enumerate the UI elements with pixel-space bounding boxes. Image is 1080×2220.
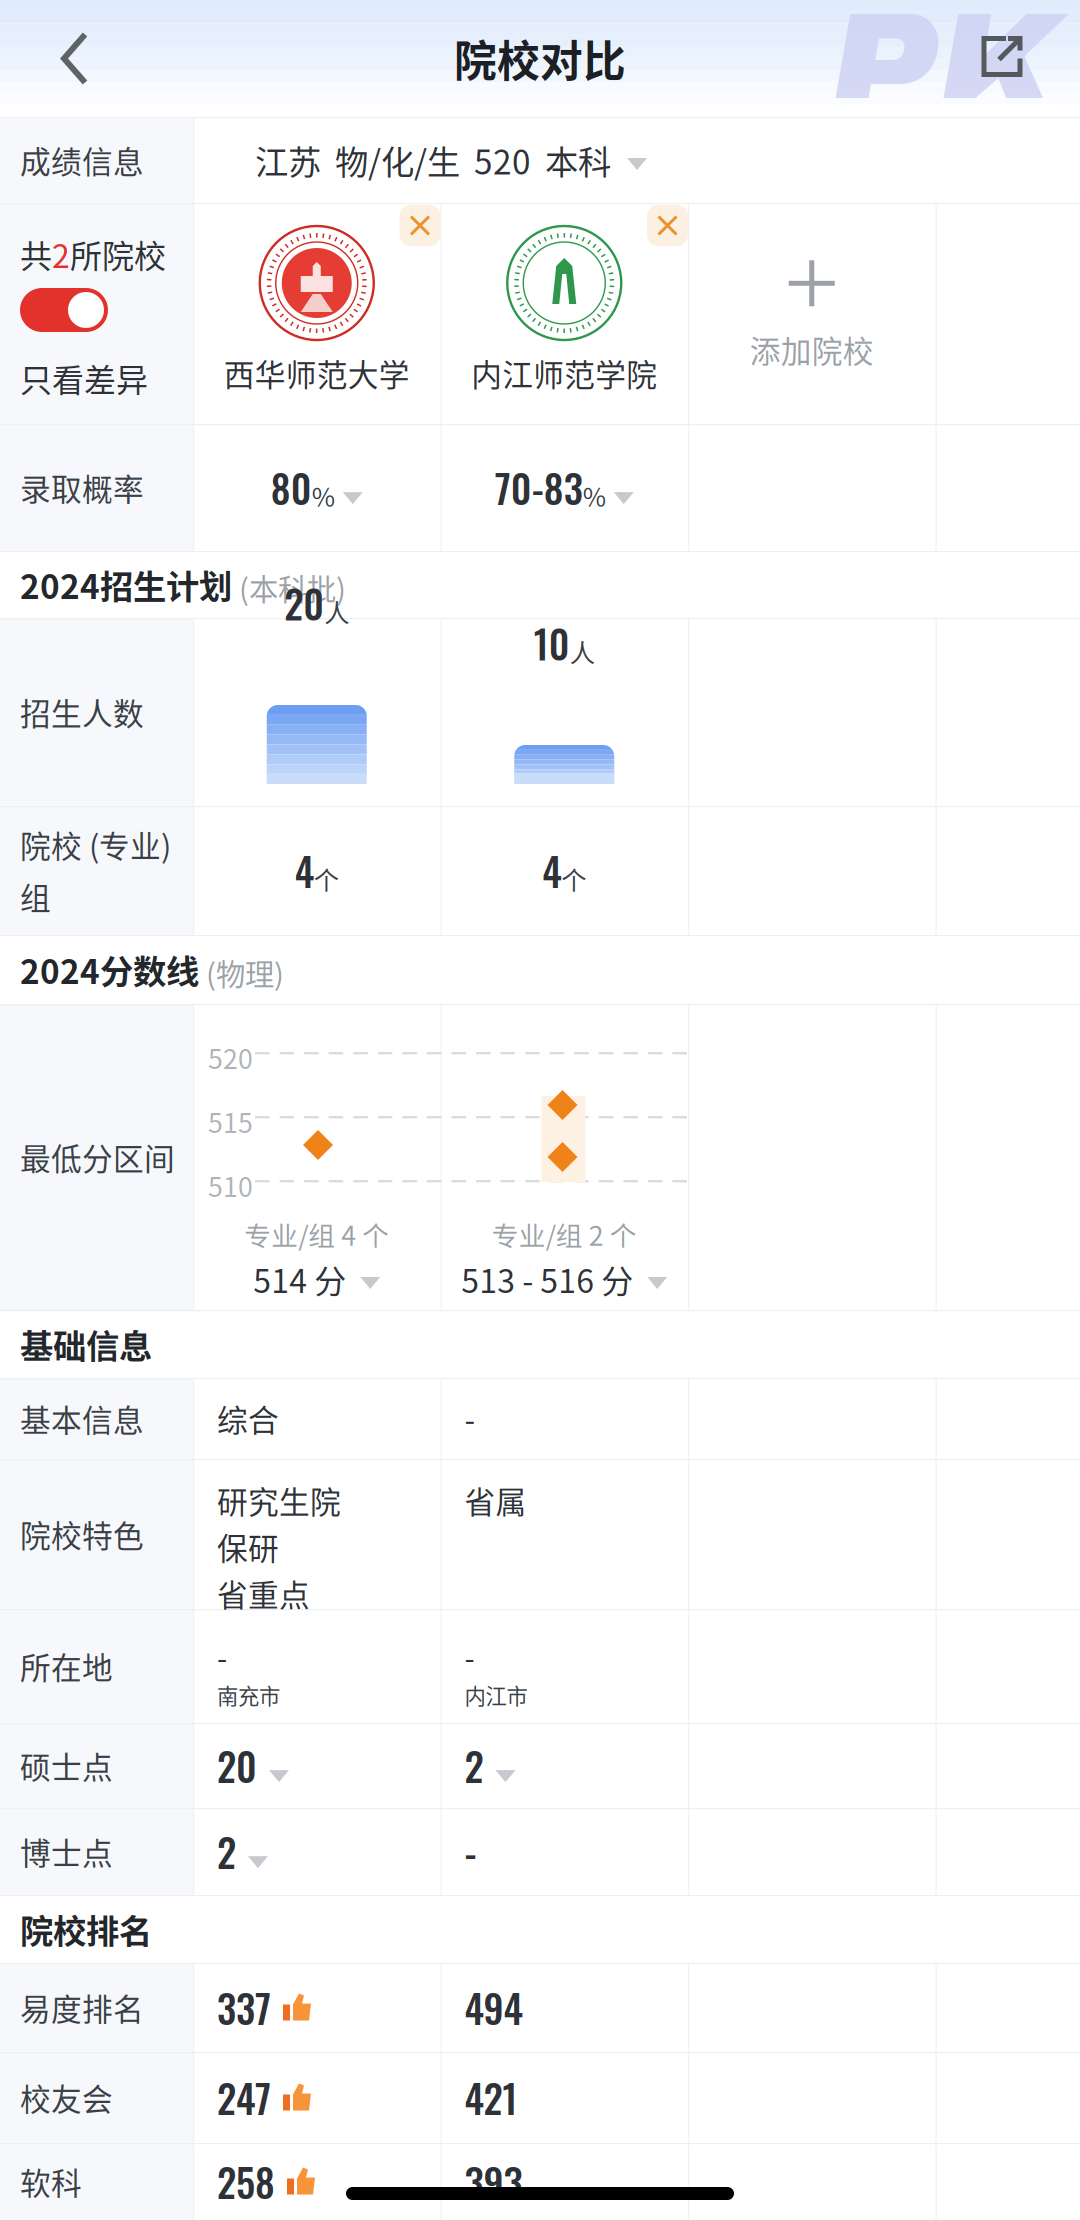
staticText: 录取概率: [20, 465, 144, 510]
staticText: 494: [464, 1979, 522, 2036]
staticText: 所院校: [70, 231, 166, 277]
staticText: 只看差异: [20, 355, 148, 401]
staticText: 添加院校: [750, 327, 874, 372]
staticText: 组: [20, 874, 51, 919]
staticText: 258: [217, 2153, 275, 2210]
staticText: 个: [314, 860, 339, 897]
staticText: 综合: [217, 1396, 279, 1441]
staticText: 2: [52, 231, 70, 277]
staticText: 513 - 516 分: [461, 1256, 633, 1302]
staticText: 247: [217, 2069, 271, 2126]
button[interactable]: 江苏 物/化/生 520 本科: [255, 117, 1080, 203]
staticText: 院校 (专业): [20, 822, 171, 866]
staticText: 博士点: [20, 1829, 113, 1874]
staticText: 421: [464, 2069, 517, 2126]
staticText: 个: [561, 860, 586, 897]
button[interactable]: 80: [193, 424, 440, 551]
staticText: 基本信息: [20, 1396, 144, 1441]
staticText: 514 分: [253, 1256, 346, 1302]
button[interactable]: 20: [217, 1723, 440, 1808]
staticText: 软科: [20, 2159, 82, 2204]
staticText: -: [464, 1396, 475, 1441]
staticText: -: [217, 1635, 227, 1677]
staticText: %: [583, 477, 606, 514]
staticText: 337: [217, 1979, 271, 2036]
staticText: 所在地: [20, 1644, 113, 1688]
staticText: 20: [217, 1737, 257, 1794]
staticText: 南充市: [217, 1679, 280, 1710]
button[interactable]: 添加院校: [688, 203, 935, 424]
staticText: PK: [828, 0, 1060, 148]
staticText: 10: [534, 614, 570, 672]
staticText: 人: [324, 593, 349, 630]
button[interactable]: 513 - 516 分: [440, 1254, 688, 1304]
staticText: 4: [542, 842, 561, 899]
staticText: 易度排名: [20, 1985, 144, 2030]
staticText: 研究生院: [217, 1478, 341, 1522]
staticText: 2: [217, 1823, 236, 1880]
button[interactable]: 2: [217, 1808, 440, 1895]
staticText: 4: [295, 842, 314, 899]
staticText: -: [464, 1823, 476, 1880]
staticText: %: [312, 477, 335, 514]
staticText: 70-83: [495, 459, 583, 516]
button[interactable]: 70-83: [440, 424, 688, 551]
staticText: 成绩信息: [20, 138, 144, 182]
button[interactable]: 只看差异: [20, 288, 108, 332]
button[interactable]: 514 分: [193, 1254, 440, 1304]
staticText: 江苏 物/化/生 520 本科: [255, 136, 611, 184]
button[interactable]: 移除西华师范大学: [399, 205, 440, 246]
staticText: 省重点: [217, 1571, 310, 1615]
staticText: 院校对比: [454, 28, 626, 89]
staticText: 内江市: [464, 1679, 527, 1710]
staticText: 20: [284, 574, 324, 632]
staticText: 515: [208, 1102, 253, 1141]
button[interactable]: 返回: [0, 0, 150, 117]
staticText: 人: [570, 633, 595, 670]
staticText: 院校特色: [20, 1512, 144, 1556]
staticText: 2024分数线: [20, 945, 199, 994]
staticText: (物理): [199, 951, 284, 994]
staticText: (本科批): [232, 566, 346, 609]
staticText: 2024招生计划: [20, 560, 232, 609]
button[interactable]: 分享: [942, 0, 1062, 115]
staticText: -: [464, 1635, 474, 1677]
staticText: 省属: [464, 1478, 526, 1522]
staticText: 最低分区间: [20, 1135, 175, 1179]
staticText: 520: [208, 1038, 253, 1077]
button[interactable]: 移除内江师范学院: [647, 205, 688, 246]
staticText: 西华师范大学: [224, 351, 410, 395]
staticText: 招生人数: [20, 690, 144, 734]
staticText: 2: [464, 1737, 483, 1794]
staticText: 共: [20, 231, 52, 277]
staticText: 硕士点: [20, 1743, 113, 1788]
staticText: 校友会: [20, 2075, 113, 2120]
staticText: 院校排名: [20, 1905, 152, 1953]
staticText: 393: [464, 2153, 522, 2210]
button[interactable]: 2: [464, 1723, 688, 1808]
staticText: 80: [271, 459, 312, 516]
staticText: 510: [208, 1166, 253, 1205]
staticText: 保研: [217, 1524, 279, 1569]
staticText: 专业/组 4 个: [244, 1215, 389, 1253]
staticText: 专业/组 2 个: [492, 1215, 637, 1253]
staticText: 基础信息: [20, 1320, 152, 1368]
staticText: 内江师范学院: [471, 351, 657, 395]
